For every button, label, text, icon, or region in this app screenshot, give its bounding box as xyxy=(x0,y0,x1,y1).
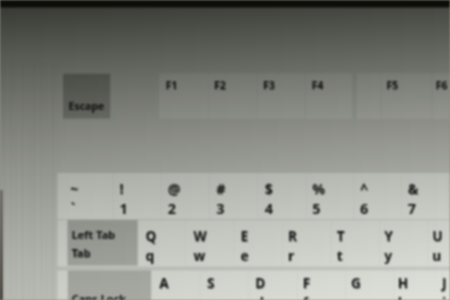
button[interactable]: Photograph of a computer keyboard xyxy=(0,0,450,300)
